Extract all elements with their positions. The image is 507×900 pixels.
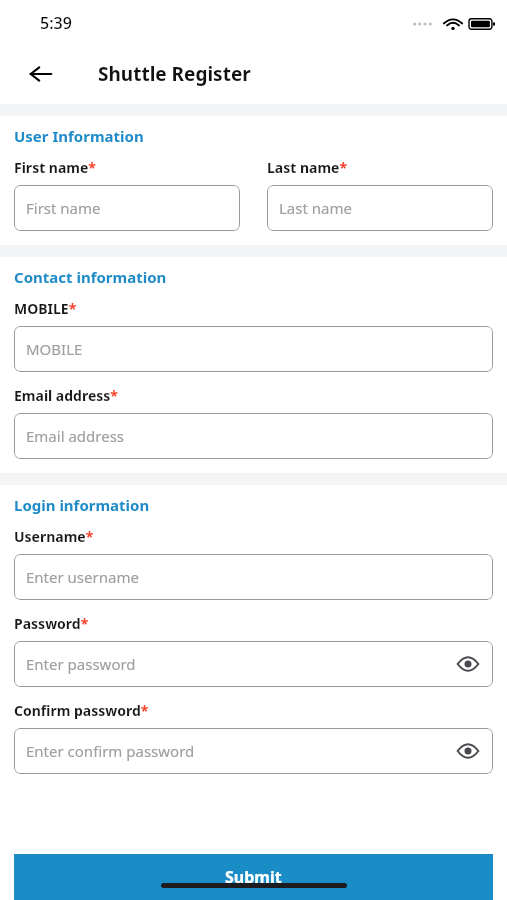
staticText: 5:39 <box>40 12 72 34</box>
button[interactable]: MOBILE <box>14 326 493 372</box>
button[interactable]: First name <box>14 185 240 231</box>
staticText: Login information <box>14 495 150 515</box>
staticText: Shuttle Register <box>98 61 251 87</box>
staticText: First name <box>26 198 228 218</box>
button[interactable]: Back <box>22 55 60 93</box>
button[interactable]: Enter confirm password <box>14 728 493 774</box>
staticText: Submit <box>225 866 282 888</box>
staticText: Email address* <box>14 386 118 405</box>
staticText: MOBILE <box>26 339 481 359</box>
button[interactable]: Enter password <box>14 641 493 687</box>
button[interactable]: Enter username <box>14 554 493 600</box>
staticText: Password* <box>14 614 89 633</box>
staticText: MOBILE* <box>14 299 77 318</box>
staticText: Contact information <box>14 267 167 287</box>
button[interactable]: Toggle password visibility <box>455 651 481 677</box>
button[interactable]: Last name <box>267 185 493 231</box>
staticText: Confirm password* <box>14 701 149 720</box>
staticText: Last name <box>279 198 481 218</box>
staticText: First name* <box>14 158 96 177</box>
staticText: User Information <box>14 126 144 146</box>
staticText: Username* <box>14 527 94 546</box>
staticText: Email address <box>26 426 481 446</box>
button[interactable]: Submit <box>14 854 493 900</box>
staticText: Enter password <box>26 654 455 674</box>
button[interactable]: Toggle password visibility <box>455 738 481 764</box>
button[interactable]: Email address <box>14 413 493 459</box>
staticText: Last name* <box>267 158 348 177</box>
staticText: Enter confirm password <box>26 741 455 761</box>
staticText: Enter username <box>26 567 481 587</box>
